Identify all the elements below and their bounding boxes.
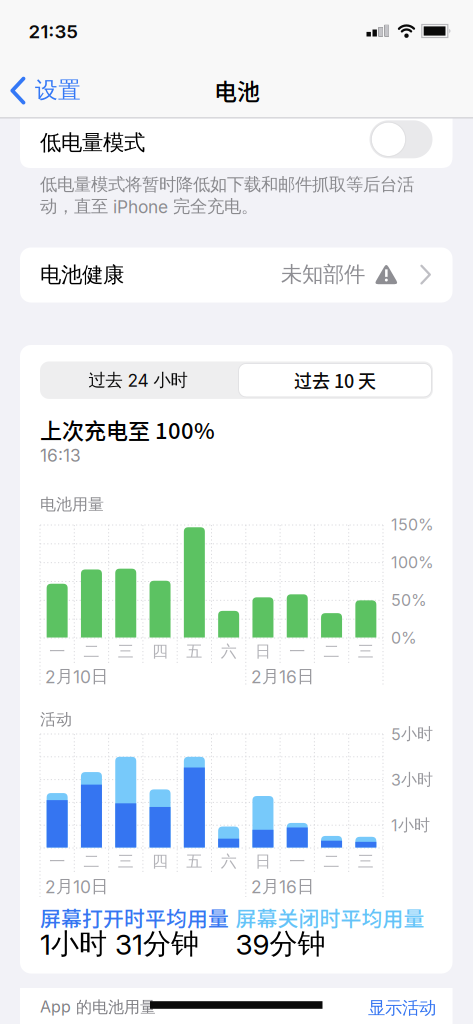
staticText: 过去 24 小时	[88, 370, 187, 391]
staticText: 上次充电至 100%	[40, 414, 215, 445]
staticText: 五	[186, 642, 202, 661]
staticText: 50%	[391, 591, 427, 610]
staticText: 21:35	[28, 20, 77, 42]
staticText: 0%	[391, 629, 417, 647]
staticText: 5小时	[391, 724, 433, 744]
staticText: 屏幕关闭时平均用量	[235, 902, 424, 932]
staticText: 电池用量	[40, 495, 104, 514]
staticText: 日	[255, 642, 271, 661]
staticText: 三	[358, 852, 374, 871]
staticText: 1小时 31分钟	[40, 927, 199, 961]
staticText: 1小时	[391, 815, 430, 835]
staticText: 日	[255, 852, 271, 871]
staticText: 二	[323, 852, 339, 871]
staticText: 一	[49, 852, 65, 871]
staticText: 150%	[391, 515, 434, 534]
staticText: 电池	[214, 74, 260, 107]
staticText: 3小时	[391, 770, 433, 789]
staticText: 显示活动	[368, 997, 436, 1019]
staticText: 一	[289, 852, 305, 871]
staticText: App 的电池用量	[40, 997, 156, 1017]
staticText: 二	[83, 852, 99, 871]
staticText: 五	[186, 852, 202, 871]
staticText: 低电量模式将暂时降低如下载和邮件抓取等后台活	[40, 174, 414, 195]
staticText: 设置	[35, 76, 81, 104]
button[interactable]: 低电量模式	[369, 120, 432, 158]
staticText: 二	[83, 642, 99, 661]
staticText: 六	[221, 642, 237, 661]
staticText: 动，直至 iPhone 完全充电。	[40, 196, 258, 217]
staticText: 三	[118, 642, 134, 661]
staticText: 低电量模式	[40, 130, 145, 156]
staticText: 100%	[391, 553, 434, 572]
staticText: 过去 10 天	[294, 367, 376, 393]
button[interactable]: 电池健康	[20, 247, 452, 302]
button[interactable]: 过去 10 天	[238, 361, 431, 399]
staticText: 六	[221, 852, 237, 871]
staticText: 未知部件	[281, 261, 365, 288]
staticText: 2月16日	[251, 666, 314, 687]
staticText: 2月16日	[251, 876, 314, 897]
staticText: 四	[152, 852, 168, 871]
staticText: 三	[118, 852, 134, 871]
button[interactable]: 过去 24 小时	[43, 361, 233, 399]
staticText: 二	[323, 642, 339, 661]
staticText: 电池健康	[40, 262, 124, 288]
staticText: 屏幕打开时平均用量	[40, 902, 229, 932]
staticText: 一	[289, 642, 305, 661]
button[interactable]: 设置	[11, 69, 101, 111]
staticText: 活动	[40, 710, 72, 729]
staticText: 2月10日	[45, 666, 108, 687]
staticText: 一	[49, 642, 65, 661]
staticText: 2月10日	[45, 876, 108, 897]
staticText: 39分钟	[235, 927, 325, 961]
staticText: 16:13	[40, 445, 81, 466]
staticText: 四	[152, 642, 168, 661]
staticText: 三	[358, 642, 374, 661]
button[interactable]: 显示活动	[326, 997, 436, 1019]
